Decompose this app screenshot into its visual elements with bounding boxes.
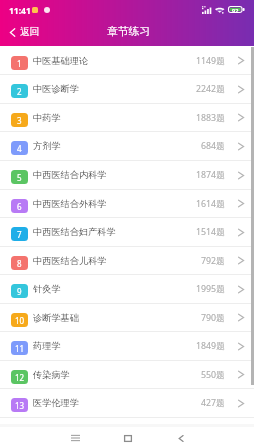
staticText: 医学伦理学	[33, 397, 79, 409]
staticText: 10	[15, 315, 25, 326]
staticText: 3	[17, 115, 22, 126]
staticText: 12	[15, 372, 25, 383]
staticText: 4	[17, 143, 22, 154]
button[interactable]: 返回	[0, 21, 49, 43]
staticText: 传染病学	[33, 369, 70, 381]
staticText: 92	[232, 7, 239, 13]
button[interactable]: 4	[0, 132, 254, 160]
staticText: 11	[15, 343, 25, 354]
staticText: 中西医结合妇产科学	[33, 226, 116, 238]
staticText: 中医诊断学	[33, 83, 79, 95]
button[interactable]: 9	[0, 275, 254, 303]
staticText: 返回	[20, 26, 40, 38]
staticText: 1614题	[196, 198, 225, 210]
staticText: 1849题	[196, 340, 225, 352]
staticText: 427题	[201, 397, 225, 409]
staticText: 2242题	[196, 83, 225, 95]
staticText: 方剂学	[33, 140, 61, 152]
button[interactable]: 2	[0, 75, 254, 103]
staticText: 1995题	[196, 283, 225, 295]
button[interactable]: 3	[0, 104, 254, 131]
staticText: 中西医结合内科学	[33, 169, 107, 181]
staticText: 1514题	[196, 226, 225, 238]
button[interactable]: 10	[0, 304, 254, 331]
button[interactable]: 11	[0, 332, 254, 360]
button[interactable]: 6	[0, 190, 254, 217]
staticText: 550题	[201, 369, 225, 381]
staticText: 中药学	[33, 112, 61, 124]
staticText: 790题	[201, 312, 225, 324]
staticText: 684题	[201, 140, 225, 152]
button[interactable]: 12	[0, 361, 254, 388]
button[interactable]: 7	[0, 218, 254, 246]
staticText: 13	[15, 400, 25, 411]
button[interactable]: 8	[0, 247, 254, 274]
staticText: 针灸学	[33, 283, 61, 295]
staticText: 9	[17, 286, 22, 297]
staticText: 5	[17, 172, 22, 183]
staticText: 药理学	[33, 340, 61, 352]
staticText: 1	[17, 58, 22, 69]
staticText: 6	[17, 201, 22, 212]
staticText: 792题	[201, 255, 225, 267]
button[interactable]: Menu	[58, 426, 92, 448]
staticText: 2	[17, 86, 22, 97]
staticText: 8	[17, 258, 22, 269]
staticText: 1149题	[196, 55, 225, 67]
staticText: 中医基础理论	[33, 55, 89, 67]
staticText: 章节练习	[107, 25, 151, 39]
button[interactable]: Back	[164, 426, 198, 448]
staticText: 1883题	[196, 112, 225, 124]
button[interactable]: Home	[111, 426, 145, 448]
staticText: 中西医结合外科学	[33, 198, 107, 210]
staticText: 中西医结合儿科学	[33, 255, 107, 267]
staticText: 诊断学基础	[33, 312, 79, 324]
button[interactable]: 13	[0, 389, 254, 417]
staticText: 7	[17, 229, 22, 240]
staticText: 1874题	[196, 169, 225, 181]
button[interactable]: 1	[0, 47, 254, 74]
staticText: 11:41	[9, 5, 31, 17]
button[interactable]: 5	[0, 161, 254, 189]
